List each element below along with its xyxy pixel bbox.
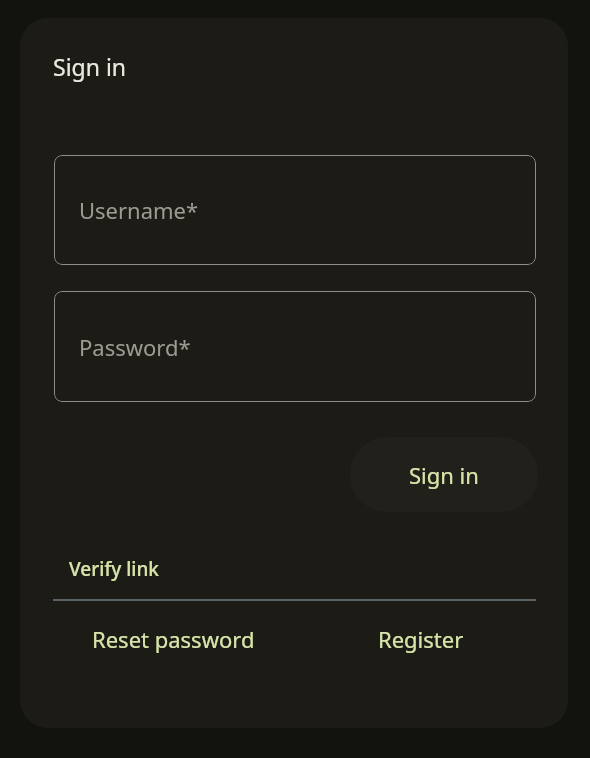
button[interactable]: Reset password xyxy=(92,624,255,654)
button[interactable]: Verify link xyxy=(69,556,159,582)
staticText: Username* xyxy=(79,195,199,225)
button[interactable]: Sign in xyxy=(350,437,538,512)
staticText: Verify link xyxy=(69,556,159,582)
staticText: Register xyxy=(378,624,464,654)
button[interactable]: Username* xyxy=(54,155,536,265)
button[interactable]: Password* xyxy=(54,291,536,402)
staticText: Password* xyxy=(79,332,191,362)
button[interactable]: Register xyxy=(378,624,464,654)
staticText: Sign in xyxy=(409,460,479,490)
staticText: Sign in xyxy=(53,51,127,82)
staticText: Reset password xyxy=(92,624,255,654)
